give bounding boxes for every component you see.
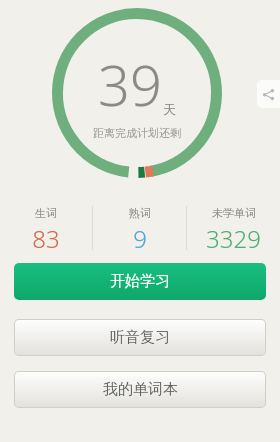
- staticText: 3329: [206, 222, 261, 254]
- staticText: 39: [98, 46, 162, 122]
- staticText: 生词: [35, 206, 57, 220]
- button[interactable]: 开始学习: [14, 263, 266, 300]
- staticText: 开始学习: [110, 272, 170, 291]
- staticText: 距离完成计划还剩: [93, 126, 181, 140]
- staticText: 未学单词: [212, 206, 256, 220]
- button[interactable]: 我的单词本: [15, 372, 265, 407]
- staticText: 9: [133, 222, 147, 254]
- staticText: 听音复习: [110, 328, 170, 347]
- staticText: 我的单词本: [103, 380, 178, 399]
- staticText: 天: [163, 101, 176, 117]
- staticText: 83: [32, 222, 60, 254]
- button[interactable]: 听音复习: [15, 320, 265, 355]
- button[interactable]: Share: [257, 80, 280, 108]
- staticText: 熟词: [129, 206, 151, 220]
